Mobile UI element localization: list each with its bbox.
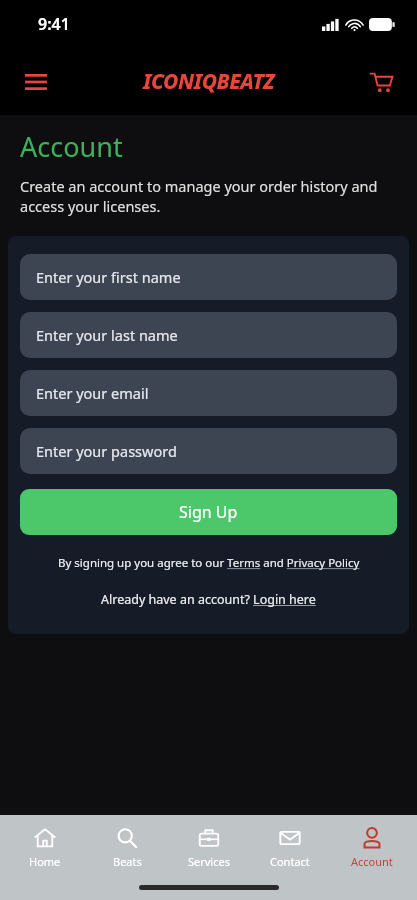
- button[interactable]: Account: [335, 825, 409, 871]
- staticText: Enter your first name: [36, 267, 181, 287]
- staticText: Sign Up: [179, 501, 238, 523]
- button[interactable]: Beats: [90, 825, 164, 871]
- button[interactable]: Contact: [253, 825, 327, 871]
- button[interactable]: Cart: [363, 64, 399, 100]
- staticText: Beats: [113, 854, 142, 869]
- staticText: Contact: [270, 854, 310, 869]
- button[interactable]: Enter your password: [20, 428, 397, 474]
- staticText: Services: [188, 854, 230, 869]
- button[interactable]: Sign Up: [20, 489, 397, 535]
- staticText: Account: [20, 128, 123, 165]
- staticText: Create an account to manage your order h…: [20, 176, 387, 217]
- staticText: ICONIQBEATZ: [143, 67, 275, 96]
- button[interactable]: Services: [172, 825, 246, 871]
- button[interactable]: Already have an account? Login here: [101, 591, 316, 608]
- button[interactable]: Enter your first name: [20, 254, 397, 300]
- button[interactable]: Enter your last name: [20, 312, 397, 358]
- staticText: Enter your email: [36, 383, 149, 403]
- staticText: 9:41: [38, 13, 70, 35]
- staticText: Home: [29, 854, 61, 869]
- staticText: Account: [351, 854, 393, 869]
- button[interactable]: By signing up you agree to our Terms and…: [58, 555, 360, 571]
- button[interactable]: Menu: [18, 64, 54, 100]
- button[interactable]: Enter your email: [20, 370, 397, 416]
- button[interactable]: Home: [8, 825, 82, 871]
- staticText: Enter your last name: [36, 325, 178, 345]
- staticText: Enter your password: [36, 441, 177, 461]
